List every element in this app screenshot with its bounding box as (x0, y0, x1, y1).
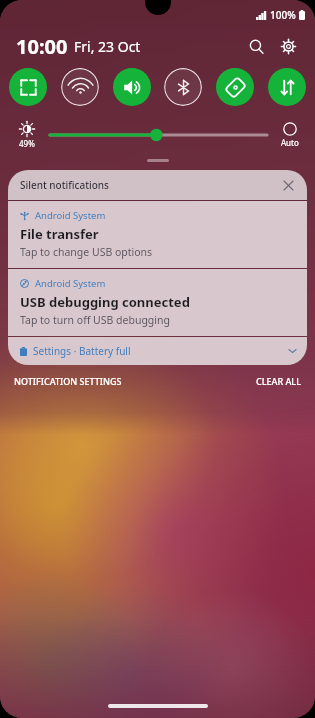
button[interactable]: Sound (113, 68, 151, 106)
staticText: Android System (35, 277, 106, 290)
button[interactable]: Search (241, 31, 271, 61)
button[interactable]: Settings (273, 31, 303, 61)
button[interactable]: Android System (8, 201, 307, 268)
staticText: Settings · Battery full (33, 344, 131, 358)
button[interactable] (50, 124, 267, 146)
staticText: Fri, 23 Oct (74, 37, 141, 56)
staticText: File transfer (20, 225, 99, 243)
button[interactable]: Auto rotate (216, 68, 254, 106)
button[interactable]: Dismiss silent notifications (277, 174, 299, 196)
staticText: CLEAR ALL (256, 375, 301, 387)
staticText: Auto (281, 137, 299, 148)
staticText: 49% (19, 138, 35, 149)
staticText: Tap to turn off USB debugging (20, 313, 170, 327)
staticText: 10:00 (16, 33, 68, 60)
button[interactable]: Silent notifications (20, 170, 299, 200)
button[interactable]: Auto brightness (275, 122, 305, 148)
button[interactable]: Android System (8, 269, 307, 336)
button[interactable]: NOTIFICATION SETTINGS (14, 375, 122, 387)
button[interactable]: Bluetooth (164, 68, 202, 106)
staticText: USB debugging connected (20, 293, 190, 311)
staticText: Silent notifications (20, 178, 109, 192)
button[interactable]: Screen capture (9, 68, 47, 106)
button[interactable]: Wi-Fi (61, 68, 99, 106)
staticText: Android System (35, 209, 106, 222)
button[interactable]: CLEAR ALL (256, 375, 301, 387)
staticText: Tap to change USB options (20, 245, 153, 259)
staticText: 100% (270, 8, 296, 22)
staticText: NOTIFICATION SETTINGS (14, 375, 122, 387)
button[interactable]: Settings · Battery full (20, 337, 297, 365)
button[interactable]: Mobile data (268, 68, 306, 106)
